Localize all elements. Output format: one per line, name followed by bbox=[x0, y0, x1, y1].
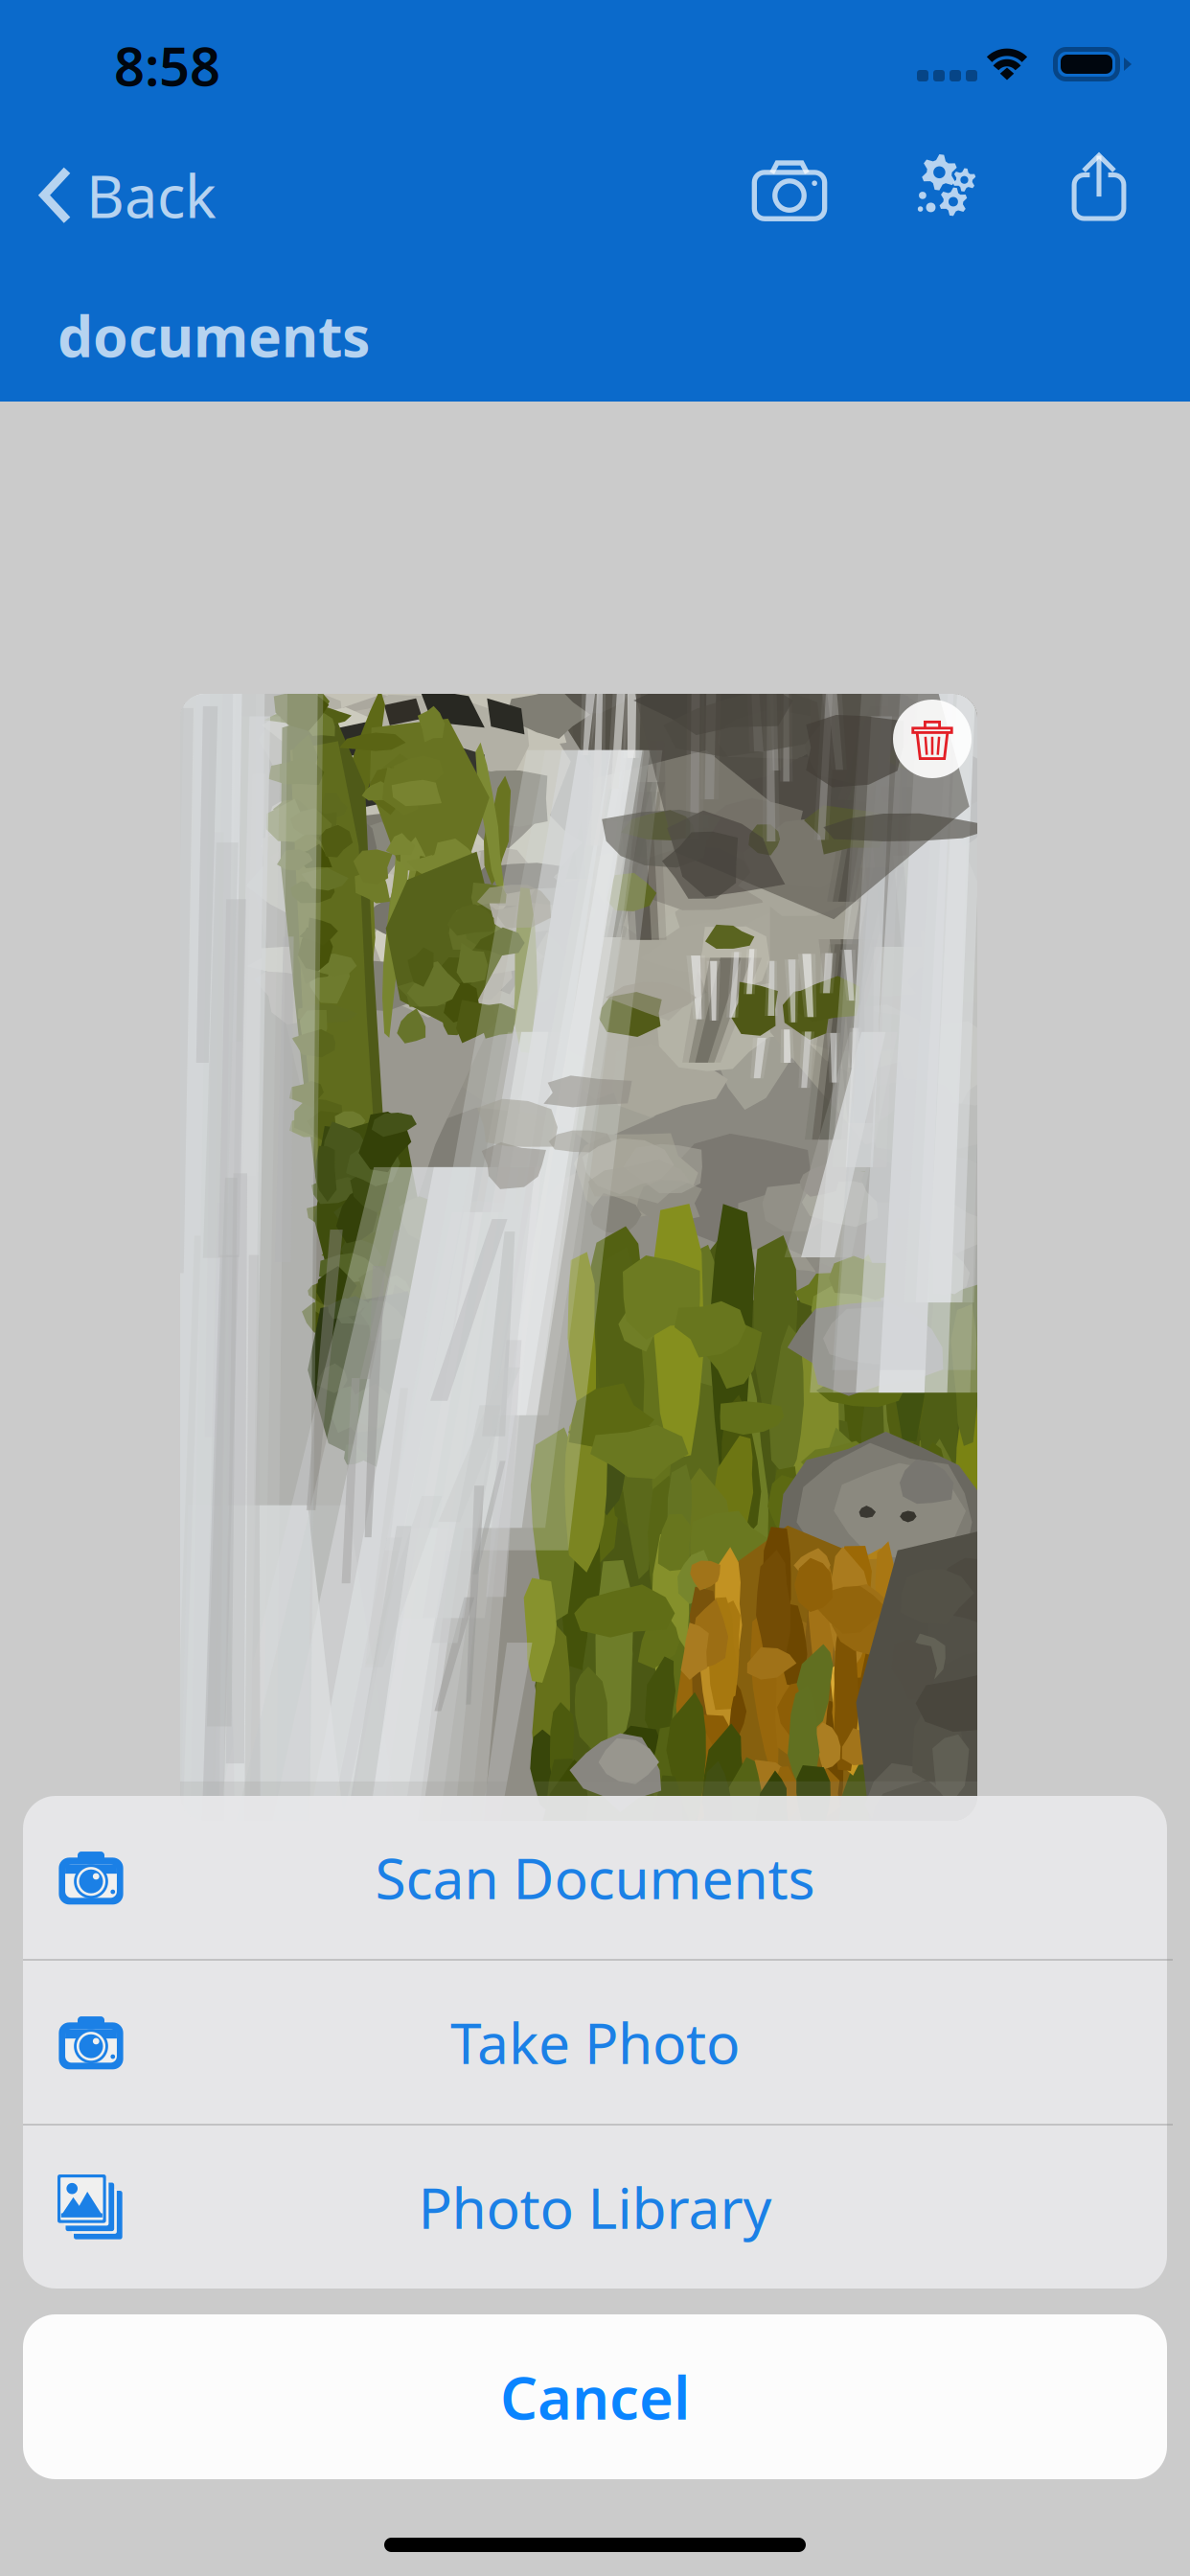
button[interactable]: Photo Library bbox=[23, 2126, 1167, 2288]
staticText: documents bbox=[57, 298, 370, 373]
button[interactable]: Camera bbox=[731, 132, 848, 249]
button[interactable]: Back bbox=[0, 137, 241, 253]
staticText: Cancel bbox=[500, 2358, 690, 2436]
staticText: Photo Library bbox=[418, 2170, 772, 2244]
button[interactable]: Take Photo bbox=[23, 1961, 1167, 2124]
staticText: Scan Documents bbox=[375, 1840, 815, 1915]
staticText: Back bbox=[86, 156, 217, 234]
button[interactable]: Share bbox=[1049, 127, 1149, 244]
button[interactable]: Settings bbox=[887, 126, 1004, 243]
staticText: 8:58 bbox=[114, 30, 220, 101]
button[interactable]: Cancel bbox=[23, 2314, 1167, 2479]
staticText: Take Photo bbox=[450, 2005, 740, 2079]
button[interactable]: Scan Documents bbox=[23, 1796, 1167, 1959]
button[interactable]: Delete bbox=[877, 683, 988, 794]
